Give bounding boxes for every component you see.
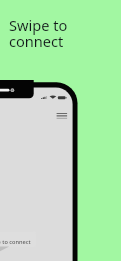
staticText: Swipe to connect — [0, 238, 31, 246]
staticText: Swipe to connect — [9, 18, 68, 50]
button[interactable]: Menu — [54, 108, 70, 124]
button[interactable]: Swipe to connect — [0, 232, 36, 248]
